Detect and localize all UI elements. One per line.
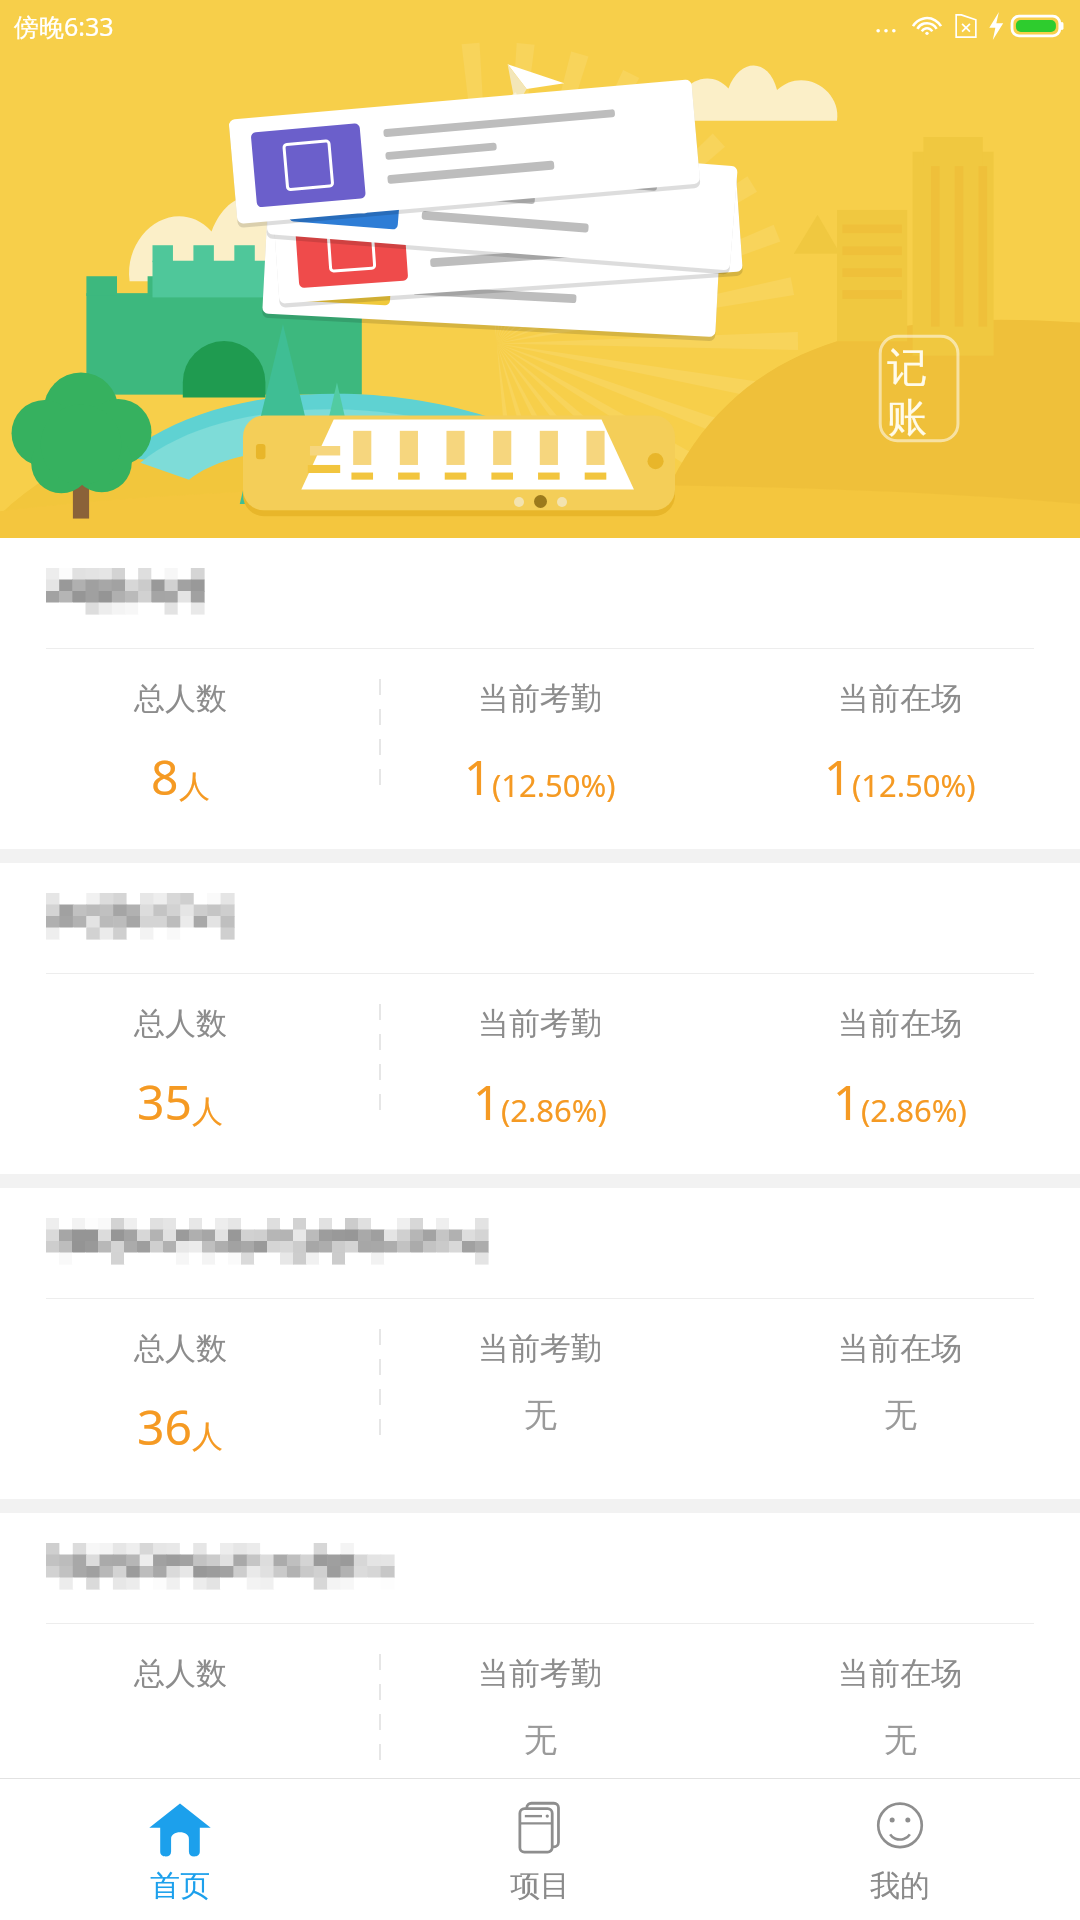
staticText: 项目 [510, 1867, 570, 1905]
staticText: 无 [524, 1719, 557, 1761]
staticText: 当前在场 [838, 679, 962, 718]
staticText: 8 [151, 744, 179, 809]
button[interactable]: 我的 [720, 1779, 1080, 1920]
button[interactable]: 项目 [360, 1779, 720, 1920]
staticText: 无 [884, 1394, 917, 1436]
button[interactable]: 总人数 [0, 1513, 1080, 1774]
staticText: 当前在场 [838, 1329, 962, 1368]
staticText: 总人数 [134, 679, 227, 718]
button[interactable]: 总人数 [0, 863, 1080, 1174]
staticText: (12.50%) [852, 764, 976, 806]
staticText: 人 [192, 1092, 223, 1131]
staticText: 当前考勤 [478, 679, 602, 718]
staticText: 记 [887, 342, 927, 392]
staticText: 1 [824, 744, 852, 809]
staticText: 当前在场 [838, 1004, 962, 1043]
staticText: 1 [473, 1069, 501, 1134]
staticText: 我的 [870, 1867, 930, 1905]
staticText: 无 [884, 1719, 917, 1761]
staticText: 傍晚6:33 [14, 9, 114, 43]
staticText: 总人数 [134, 1004, 227, 1043]
staticText: (2.86%) [861, 1089, 967, 1131]
button[interactable]: 首页 [0, 1779, 360, 1920]
staticText: 当前在场 [838, 1654, 962, 1693]
staticText: 当前考勤 [478, 1004, 602, 1043]
staticText: 人 [192, 1417, 223, 1456]
staticText: 当前考勤 [478, 1654, 602, 1693]
staticText: 35 [137, 1069, 192, 1134]
staticText: 总人数 [134, 1654, 227, 1693]
staticText: 无 [524, 1394, 557, 1436]
button[interactable]: 记 [0, 52, 1080, 538]
staticText: 1 [464, 744, 492, 809]
staticText: 账 [887, 392, 927, 442]
staticText: (12.50%) [492, 764, 616, 806]
staticText: 首页 [150, 1867, 210, 1905]
button[interactable]: 总人数 [0, 538, 1080, 849]
staticText: (2.86%) [501, 1089, 607, 1131]
staticText: 36 [137, 1394, 192, 1459]
staticText: 当前考勤 [478, 1329, 602, 1368]
staticText: 人 [179, 767, 210, 806]
staticText: 1 [833, 1069, 861, 1134]
button[interactable]: 总人数 [0, 1188, 1080, 1499]
staticText: 总人数 [134, 1329, 227, 1368]
